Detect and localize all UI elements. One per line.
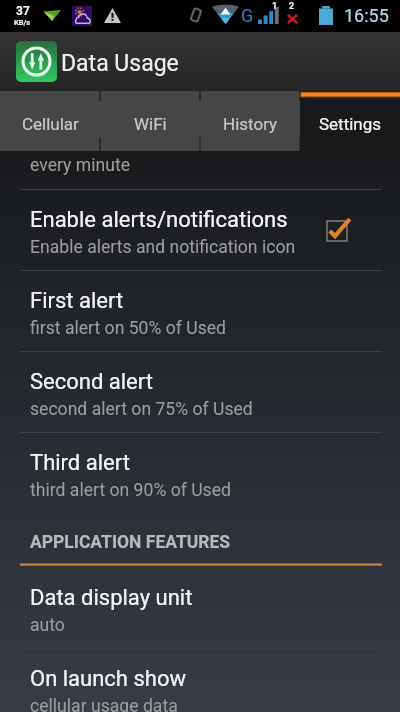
button[interactable]: every minute (0, 151, 400, 189)
button[interactable]: Settings (300, 91, 400, 151)
staticText: First alert (30, 288, 124, 314)
staticText: Cellular (22, 114, 79, 134)
staticText: 1 (272, 1, 278, 12)
staticText: 16:55 (344, 5, 389, 26)
staticText: Enable alerts and notification icon (30, 237, 296, 258)
staticText: History (223, 114, 278, 134)
staticText: auto (30, 615, 65, 636)
staticText: Data Usage (61, 50, 179, 77)
staticText: KB/s (14, 18, 31, 27)
button[interactable]: Cellular (0, 91, 100, 151)
button[interactable]: Third alert (0, 433, 400, 513)
button[interactable]: First alert (0, 271, 400, 351)
staticText: G (241, 5, 254, 26)
button[interactable]: Second alert (0, 352, 400, 432)
staticText: first alert on 50% of Used (30, 318, 226, 339)
staticText: Third alert (30, 450, 130, 476)
staticText: 2 (289, 1, 295, 12)
staticText: Enable alerts/notifications (30, 207, 288, 233)
button[interactable]: On launch show (0, 649, 400, 712)
staticText: cellular usage data (30, 696, 178, 712)
staticText: every minute (30, 155, 130, 176)
button[interactable]: History (200, 91, 300, 151)
button[interactable]: WiFi (100, 91, 200, 151)
button[interactable]: Enable alerts/notifications (0, 190, 400, 270)
staticText: Second alert (30, 369, 153, 395)
staticText: WiFi (134, 114, 167, 134)
staticText: APPLICATION FEATURES (30, 532, 231, 553)
button[interactable]: Data display unit (0, 568, 400, 648)
staticText: third alert on 90% of Used (30, 480, 231, 501)
staticText: second alert on 75% of Used (30, 399, 253, 420)
staticText: 37 (16, 4, 30, 18)
staticText: Data display unit (30, 585, 193, 611)
staticText: On launch show (30, 666, 186, 692)
staticText: Settings (319, 114, 382, 134)
